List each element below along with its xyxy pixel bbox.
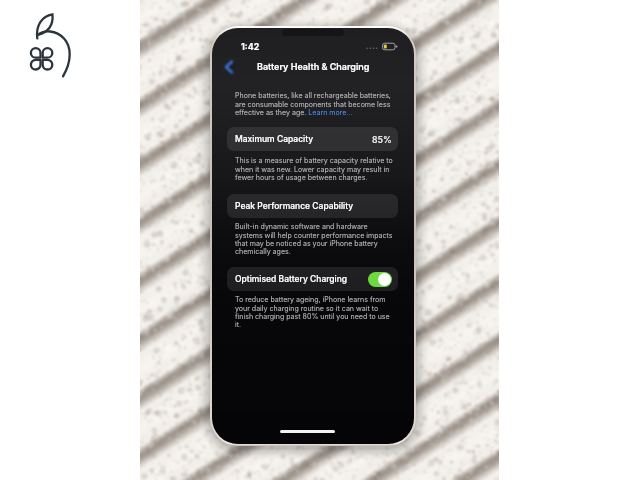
staticText: 1:42 — [241, 41, 260, 52]
button[interactable]: Optimised Battery Charging — [368, 272, 392, 287]
staticText: To reduce battery ageing, iPhone learns … — [235, 295, 394, 329]
staticText: This is a measure of battery capacity re… — [235, 156, 394, 182]
staticText: Built-in dynamic software and hardware s… — [235, 222, 394, 256]
button[interactable]: Back — [220, 58, 238, 76]
staticText: Peak Performance Capability — [235, 201, 354, 211]
button[interactable]: Peak Performance Capability — [227, 194, 398, 218]
button[interactable]: App logo — [26, 8, 78, 82]
staticText: Battery Health & Charging — [257, 61, 370, 72]
staticText: Optimised Battery Charging — [235, 274, 348, 284]
staticText: Phone batteries, like all rechargeable b… — [235, 91, 394, 117]
button[interactable]: Maximum Capacity — [227, 127, 398, 151]
staticText: Maximum Capacity — [235, 134, 314, 144]
staticText: 85% — [372, 134, 392, 145]
button[interactable]: Optimised Battery Charging — [227, 267, 398, 291]
